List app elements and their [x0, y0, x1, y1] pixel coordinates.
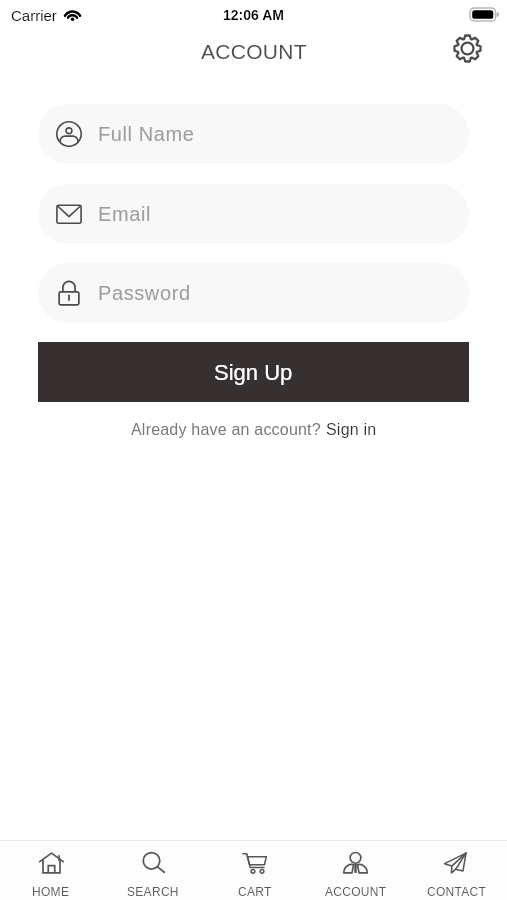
- staticText: ACCOUNT: [325, 885, 387, 898]
- button[interactable]: ACCOUNT: [305, 849, 406, 900]
- button[interactable]: Full Name: [38, 104, 469, 164]
- staticText: ACCOUNT: [201, 40, 307, 63]
- staticText: SEARCH: [127, 885, 179, 898]
- staticText: CONTACT: [427, 885, 487, 898]
- button[interactable]: CONTACT: [406, 849, 507, 900]
- button[interactable]: Sign in: [326, 421, 377, 439]
- button[interactable]: Password: [38, 263, 469, 323]
- staticText: Sign in: [326, 421, 377, 439]
- button[interactable]: Email: [38, 184, 469, 244]
- staticText: Carrier: [11, 7, 57, 24]
- button[interactable]: HOME: [0, 849, 102, 900]
- staticText: Sign Up: [214, 360, 293, 385]
- staticText: 12:06 AM: [223, 7, 284, 23]
- staticText: Password: [98, 282, 191, 304]
- staticText: Already have an account?: [131, 421, 326, 439]
- staticText: Full Name: [98, 123, 195, 145]
- button[interactable]: CART: [204, 849, 305, 900]
- button[interactable]: SEARCH: [102, 849, 204, 900]
- staticText: CART: [238, 885, 272, 898]
- staticText: Email: [98, 203, 152, 225]
- staticText: HOME: [32, 885, 70, 898]
- button[interactable]: Settings: [448, 29, 486, 67]
- button[interactable]: Sign Up: [38, 342, 469, 402]
